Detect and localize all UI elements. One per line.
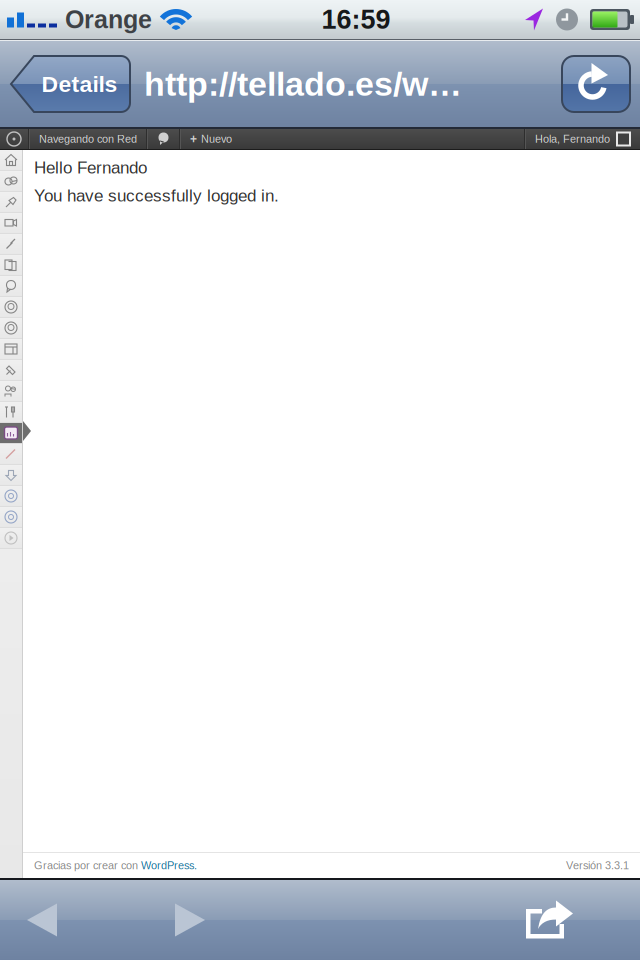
button[interactable]: Menu item: [0, 276, 22, 296]
staticText: 16:59: [321, 4, 390, 35]
button[interactable]: Details: [11, 56, 130, 112]
button[interactable]: Forward: [148, 880, 232, 959]
button[interactable]: Menu item: [0, 465, 22, 485]
button[interactable]: Navegando con Red: [30, 129, 146, 149]
button[interactable]: WordPress: [0, 129, 28, 149]
staticText: Versión 3.3.1: [566, 859, 629, 872]
staticText: Gracias por crear con: [34, 859, 141, 872]
staticText: Hello Fernando: [34, 158, 147, 177]
staticText: Nuevo: [201, 133, 232, 145]
button[interactable]: Menu item: [0, 444, 22, 464]
button[interactable]: Menu item: [0, 318, 22, 338]
button[interactable]: Menu item: [0, 213, 22, 233]
staticText: WordPress.: [141, 859, 197, 872]
button[interactable]: Menu item: [0, 171, 22, 191]
button[interactable]: Menu item: [0, 402, 22, 422]
button[interactable]: Reload: [562, 56, 630, 112]
button[interactable]: Menu item: [0, 423, 22, 443]
button[interactable]: Menu item: [0, 255, 22, 275]
button[interactable]: WordPress.: [141, 859, 197, 872]
button[interactable]: Comments: [148, 129, 179, 149]
button[interactable]: Menu item: [0, 381, 22, 401]
staticText: Hola, Fernando: [535, 133, 610, 145]
button[interactable]: Menu item: [0, 150, 22, 170]
staticText: +: [190, 132, 197, 146]
staticText: Details: [41, 71, 117, 97]
button[interactable]: Share: [504, 880, 596, 960]
button[interactable]: Menu item: [0, 192, 22, 212]
staticText: Orange: [65, 5, 152, 33]
button[interactable]: Back: [0, 880, 84, 959]
staticText: You have successfully logged in.: [34, 186, 279, 205]
button[interactable]: +: [181, 129, 241, 149]
staticText: http://tellado.es/w…: [144, 65, 462, 103]
button[interactable]: Menu item: [0, 297, 22, 317]
button[interactable]: Menu item: [0, 360, 22, 380]
button[interactable]: Menu item: [0, 486, 22, 506]
button[interactable]: Menu item: [0, 339, 22, 359]
button[interactable]: Menu item: [0, 234, 22, 254]
button[interactable]: Hola, Fernando: [526, 129, 640, 149]
button[interactable]: Menu item: [0, 507, 22, 527]
staticText: Navegando con Red: [39, 133, 137, 145]
button[interactable]: Menu item: [0, 528, 22, 548]
